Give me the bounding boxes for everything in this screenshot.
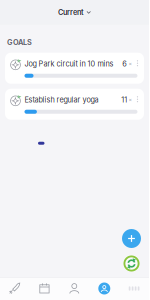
staticText: GOALS [7,38,32,47]
staticText: 6 [122,59,127,68]
button[interactable]: Sync [123,255,140,272]
staticText: Jog Park circuit in 10 mins [24,59,113,68]
staticText: 11 [121,95,127,104]
button[interactable]: Jog Park circuit in 10 mins [5,53,144,84]
button[interactable]: Add goal [122,229,141,248]
button[interactable]: Establish regular yoga [5,89,144,120]
staticText: Establish regular yoga [24,95,98,104]
staticText: Current [58,8,84,17]
button[interactable]: Goals [0,282,30,295]
button[interactable]: Account [89,282,119,295]
button[interactable]: Current [0,0,149,25]
button[interactable]: Profile [60,282,89,295]
staticText: × [128,60,132,67]
button[interactable]: More [119,282,149,295]
staticText: × [128,96,132,103]
button[interactable]: Calendar [30,282,60,295]
